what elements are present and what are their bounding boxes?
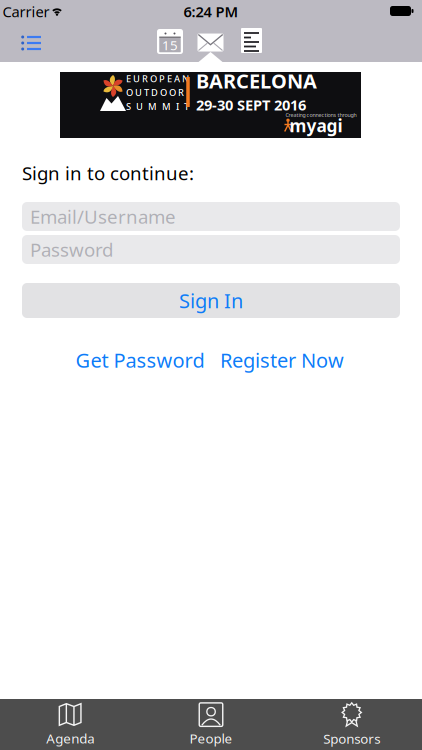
- staticText: myagi: [289, 114, 342, 137]
- staticText: Password: [30, 237, 113, 262]
- staticText: Carrier: [2, 2, 49, 21]
- staticText: E U R O P E A N: [126, 72, 189, 85]
- staticText: Email/Username: [30, 204, 176, 229]
- button[interactable]: Agenda: [0, 701, 140, 749]
- staticText: S U M M I T: [126, 100, 189, 113]
- button[interactable]: Get Password: [60, 345, 220, 375]
- button[interactable]: Password: [22, 235, 400, 264]
- button[interactable]: People: [141, 701, 281, 749]
- staticText: Sponsors: [323, 730, 380, 747]
- staticText: O U T D O O R: [126, 86, 184, 99]
- staticText: Creating connections through: [285, 111, 356, 119]
- staticText: Register Now: [220, 347, 344, 373]
- button[interactable]: E U R O P E A N: [60, 72, 361, 138]
- staticText: Get Password: [75, 347, 204, 373]
- staticText: 29-30 SEPT 2016: [196, 95, 306, 114]
- button[interactable]: Register Now: [202, 345, 362, 375]
- staticText: People: [189, 729, 232, 747]
- button[interactable]: Sign In: [22, 283, 400, 318]
- staticText: Agenda: [46, 729, 94, 747]
- staticText: Sign in to continue:: [22, 161, 194, 185]
- staticText: 15: [162, 36, 178, 54]
- staticText: 6:24 PM: [183, 2, 238, 21]
- button[interactable]: Email/Username: [22, 202, 400, 231]
- button[interactable]: Sponsors: [282, 701, 422, 749]
- button[interactable]: [234, 24, 268, 56]
- button[interactable]: [14, 28, 50, 58]
- staticText: BARCELONA: [196, 67, 317, 94]
- button[interactable]: [192, 26, 228, 58]
- staticText: Sign In: [179, 287, 243, 314]
- button[interactable]: 15: [152, 25, 188, 57]
